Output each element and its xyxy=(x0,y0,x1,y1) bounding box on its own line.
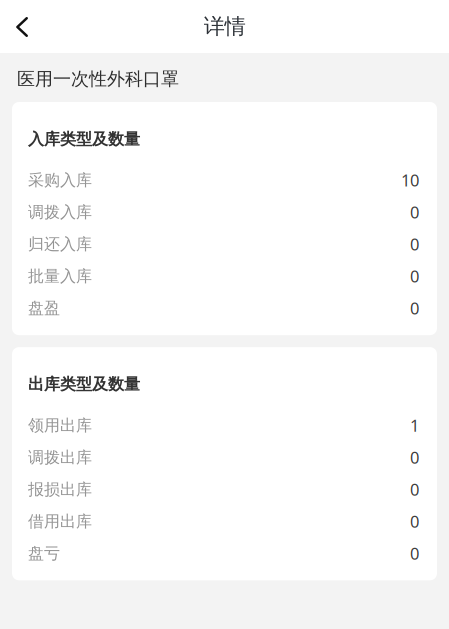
staticText: 0 xyxy=(410,510,419,533)
staticText: 详情 xyxy=(203,13,245,40)
staticText: 0 xyxy=(410,233,419,255)
button[interactable]: 借用出库 xyxy=(12,505,437,537)
staticText: 调拨出库 xyxy=(28,447,92,467)
staticText: 0 xyxy=(410,201,419,223)
staticText: 10 xyxy=(401,169,419,191)
staticText: 借用出库 xyxy=(28,511,92,531)
staticText: 0 xyxy=(410,542,419,565)
staticText: 采购入库 xyxy=(28,170,92,190)
staticText: 0 xyxy=(410,446,419,469)
staticText: 批量入库 xyxy=(28,266,92,286)
staticText: 0 xyxy=(410,297,419,319)
button[interactable]: 归还入库 xyxy=(12,228,437,260)
button[interactable]: 盘亏 xyxy=(12,537,437,569)
staticText: 出库类型及数量 xyxy=(28,374,140,394)
button[interactable]: 批量入库 xyxy=(12,260,437,292)
button[interactable]: Back xyxy=(0,0,46,53)
button[interactable]: 调拨出库 xyxy=(12,441,437,473)
staticText: 0 xyxy=(410,478,419,501)
staticText: 1 xyxy=(410,414,419,437)
staticText: 0 xyxy=(410,265,419,287)
button[interactable]: 调拨入库 xyxy=(12,196,437,228)
staticText: 报损出库 xyxy=(28,479,92,499)
staticText: 入库类型及数量 xyxy=(28,129,140,149)
staticText: 归还入库 xyxy=(28,234,92,254)
button[interactable]: 报损出库 xyxy=(12,473,437,505)
staticText: 调拨入库 xyxy=(28,202,92,222)
button[interactable]: 领用出库 xyxy=(12,409,437,441)
staticText: 医用一次性外科口罩 xyxy=(17,68,179,90)
staticText: 盘盈 xyxy=(28,298,60,318)
button[interactable]: 采购入库 xyxy=(12,164,437,196)
staticText: 领用出库 xyxy=(28,415,92,435)
button[interactable]: 盘盈 xyxy=(12,292,437,324)
staticText: 盘亏 xyxy=(28,543,60,563)
